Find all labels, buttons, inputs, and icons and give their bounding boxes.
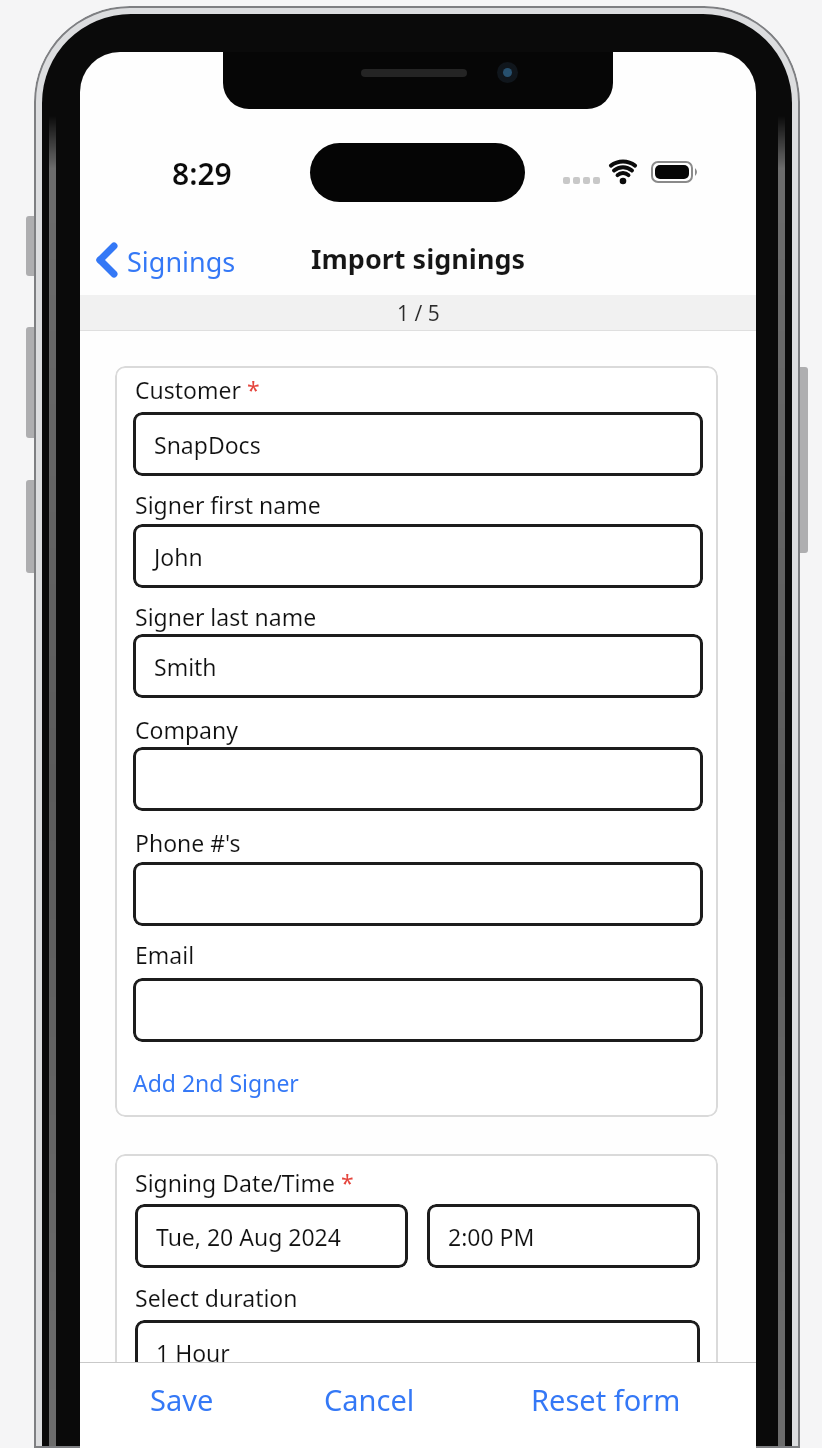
button[interactable]: Cancel [324,1374,444,1424]
button[interactable] [133,862,703,926]
staticText: Signer last name [135,601,317,632]
button[interactable]: John [133,524,703,588]
staticText: Customer [135,374,241,405]
staticText: Save [150,1380,214,1419]
staticText: Reset form [531,1380,681,1419]
button[interactable]: Save [150,1374,240,1424]
button[interactable]: Add 2nd Signer [133,1067,299,1098]
staticText: Select duration [135,1282,298,1313]
staticText: Email [135,939,195,970]
staticText: 8:29 [172,153,232,194]
button[interactable]: Smith [133,634,703,698]
button[interactable]: 2:00 PM [427,1204,700,1268]
staticText: Company [135,714,238,745]
button[interactable] [133,747,703,811]
staticText: Add 2nd Signer [133,1067,299,1098]
staticText: Signer first name [135,489,321,520]
staticText: John [154,541,203,572]
button[interactable]: 1 Hour [135,1320,700,1384]
staticText: Tue, 20 Aug 2024 [156,1221,341,1252]
staticText: Signing Date/Time [135,1167,335,1198]
button[interactable]: Signings [90,238,290,282]
button[interactable]: SnapDocs [133,412,703,476]
button[interactable]: Tue, 20 Aug 2024 [135,1204,408,1268]
staticText: Cancel [324,1380,415,1419]
staticText: 2:00 PM [448,1221,535,1252]
staticText: Signings [127,243,236,280]
staticText: SnapDocs [154,429,261,460]
staticText: * [241,374,260,405]
staticText: Smith [154,651,217,682]
staticText: Import signings [311,240,526,277]
button[interactable] [133,978,703,1042]
staticText: * [335,1167,354,1198]
staticText: Phone #'s [135,827,241,858]
button[interactable]: Reset form [531,1374,701,1424]
staticText: 1 / 5 [397,299,440,328]
staticText: 1 Hour [156,1337,230,1368]
